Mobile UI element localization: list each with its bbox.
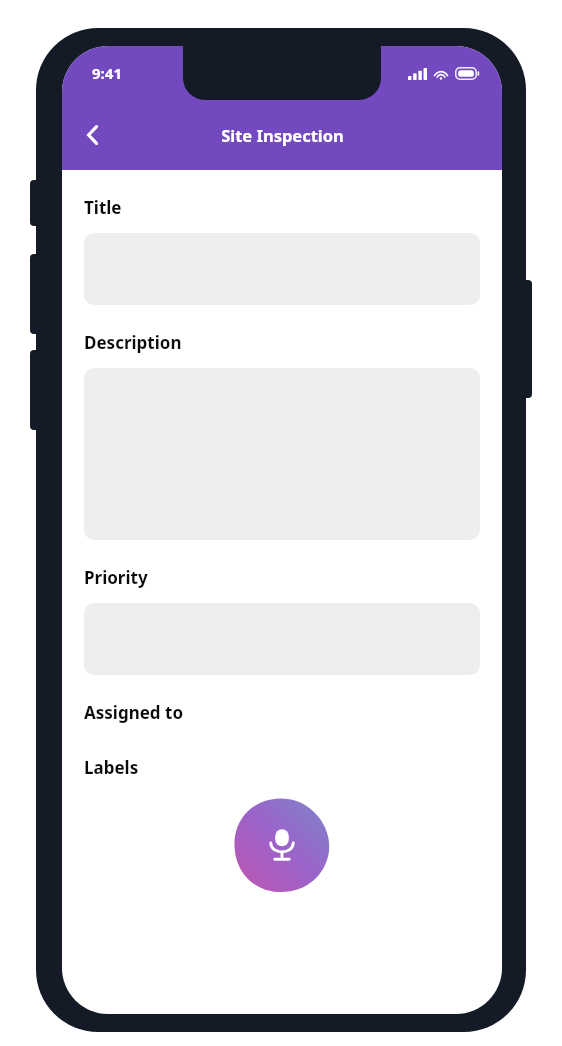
staticText: Site Inspection [221,124,344,146]
staticText: Priority [84,566,148,589]
button[interactable]: Record voice note [234,797,330,893]
button[interactable]: Back [70,112,116,158]
staticText: 9:41 [92,63,122,83]
staticText: Assigned to [84,701,184,724]
staticText: Description [84,331,182,354]
staticText: Title [84,196,122,219]
staticText: Labels [84,756,139,779]
